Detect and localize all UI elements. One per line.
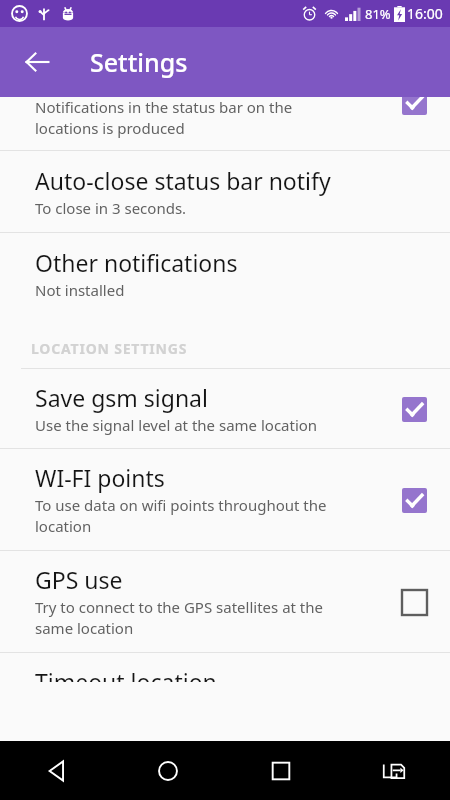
button[interactable]: Rotate screen xyxy=(337,741,450,800)
button[interactable]: Other notifications xyxy=(0,233,450,314)
button[interactable]: GPS use xyxy=(0,551,450,652)
button[interactable]: Notifications xyxy=(0,97,450,150)
button[interactable]: Recents xyxy=(224,741,337,800)
staticText: Save gsm signal xyxy=(35,382,208,413)
staticText: Try to connect to the GPS satellites at … xyxy=(35,597,324,639)
staticText: Use the signal level at the same locatio… xyxy=(35,415,318,435)
button[interactable]: Back xyxy=(14,39,60,85)
staticText: To close in 3 seconds. xyxy=(35,198,187,218)
button[interactable]: Home xyxy=(112,741,224,800)
staticText: Timeout location xyxy=(35,666,217,682)
button[interactable]: Toggle xyxy=(398,393,430,425)
staticText: Other notifications xyxy=(35,247,238,278)
staticText: GPS use xyxy=(35,564,123,595)
button[interactable]: Save gsm signal xyxy=(0,369,450,448)
staticText: Auto-close status bar notify xyxy=(35,165,331,196)
button[interactable]: Auto-close status bar notify xyxy=(0,151,450,232)
staticText: 16:00 xyxy=(407,4,443,23)
staticText: To use data on wifi points throughout th… xyxy=(35,495,327,537)
button[interactable]: Back xyxy=(0,741,112,800)
button[interactable]: Toggle xyxy=(398,484,430,516)
staticText: Not installed xyxy=(35,280,125,300)
button[interactable]: WI-FI points xyxy=(0,449,450,550)
button[interactable]: Timeout location xyxy=(0,653,450,695)
staticText: Notifications in the status bar on the l… xyxy=(35,97,293,139)
staticText: LOCATION SETTINGS xyxy=(31,339,188,358)
staticText: WI-FI points xyxy=(35,462,165,493)
button[interactable]: Toggle xyxy=(398,97,430,118)
staticText: Settings xyxy=(90,45,188,79)
button[interactable]: Toggle xyxy=(398,586,430,618)
staticText: 81% xyxy=(365,5,391,23)
